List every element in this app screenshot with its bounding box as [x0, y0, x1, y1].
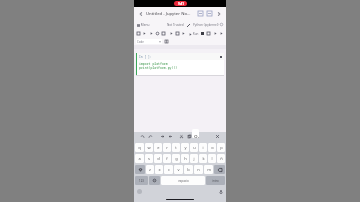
staticText: e	[157, 145, 160, 150]
button[interactable]: Paste	[195, 134, 200, 139]
button[interactable]: Undo	[140, 134, 145, 139]
button[interactable]: q	[135, 143, 144, 152]
button[interactable]: espacio	[161, 176, 205, 185]
button[interactable]: Forward	[215, 10, 223, 18]
button[interactable]: Toolbar action	[149, 31, 154, 36]
button[interactable]: Toolbar action	[161, 31, 166, 36]
staticText: d	[157, 156, 160, 161]
button[interactable]: Grid	[164, 39, 169, 44]
button[interactable]: Shift	[135, 165, 145, 174]
button[interactable]: s	[145, 154, 153, 163]
button[interactable]: Indent	[160, 134, 165, 139]
button[interactable]: Back	[137, 10, 145, 18]
button[interactable]: Toolbar action	[142, 31, 147, 36]
button[interactable]: Close	[215, 134, 220, 139]
button[interactable]: h	[181, 154, 189, 163]
staticText: espacio	[178, 179, 189, 183]
button[interactable]: i	[199, 143, 207, 152]
button[interactable]: k	[199, 154, 207, 163]
button[interactable]: l	[208, 154, 216, 163]
button[interactable]: Emoji	[149, 176, 160, 185]
button[interactable]: ñ	[217, 154, 225, 163]
button[interactable]: Copy	[187, 134, 192, 139]
button[interactable]: u	[190, 143, 198, 152]
staticText: v	[177, 167, 180, 172]
button[interactable]: Menu	[137, 23, 150, 27]
button[interactable]: Bookmark	[206, 10, 213, 17]
staticText: Menu	[140, 23, 150, 27]
staticText: x	[158, 167, 161, 172]
button[interactable]: a	[135, 154, 144, 163]
staticText: g	[175, 156, 178, 161]
staticText: f	[166, 156, 168, 161]
button[interactable]: w	[145, 143, 153, 152]
button[interactable]: y	[181, 143, 189, 152]
staticText: Run	[192, 32, 199, 36]
button[interactable]: Cell menu	[219, 55, 222, 58]
staticText: p	[220, 145, 223, 150]
button[interactable]: m	[204, 165, 213, 174]
button[interactable]: t	[172, 143, 180, 152]
button[interactable]: v	[174, 165, 183, 174]
button[interactable]: p	[217, 143, 225, 152]
button[interactable]: intro	[206, 176, 225, 185]
button[interactable]: Toolbar action	[219, 31, 224, 36]
staticText: Python (ipykernel)	[193, 23, 219, 27]
button[interactable]: Toolbar action	[181, 31, 186, 36]
button[interactable]: Toolbar action	[136, 31, 141, 36]
staticText: 9:41	[178, 2, 184, 6]
staticText: o	[211, 145, 214, 150]
staticText: c	[168, 167, 170, 172]
button[interactable]: Toolbar action	[155, 31, 160, 36]
staticText: y	[184, 145, 187, 150]
button[interactable]: j	[190, 154, 198, 163]
staticText: l	[211, 156, 213, 161]
button[interactable]: In [ ]:	[136, 53, 224, 75]
staticText: q	[138, 145, 141, 150]
button[interactable]: Backspace	[214, 165, 225, 174]
button[interactable]: Dictate	[218, 189, 223, 194]
button[interactable]: Edit	[186, 23, 190, 27]
staticText: r	[166, 145, 168, 150]
staticText: h	[184, 156, 187, 161]
staticText: w	[147, 145, 151, 150]
button[interactable]: g	[172, 154, 180, 163]
button[interactable]: o	[208, 143, 216, 152]
staticText: k	[202, 156, 205, 161]
button[interactable]: Toolbar action	[169, 31, 174, 36]
staticText: In [ ]:	[139, 55, 152, 59]
staticText: print(platform.py())	[139, 66, 178, 70]
button[interactable]: Keyboard settings	[137, 189, 142, 194]
staticText: n	[197, 167, 200, 172]
button[interactable]: Share	[197, 10, 204, 17]
staticText: i	[202, 145, 204, 150]
button[interactable]: Not Trusted	[167, 23, 184, 27]
button[interactable]: r	[163, 143, 171, 152]
staticText: m	[207, 167, 211, 172]
staticText: z	[149, 167, 151, 172]
button[interactable]: x	[155, 165, 163, 174]
staticText: u	[193, 145, 196, 150]
button[interactable]: n	[194, 165, 203, 174]
button[interactable]: Toolbar action	[200, 31, 205, 36]
button[interactable]: Toolbar action	[213, 31, 218, 36]
staticText: b	[187, 167, 190, 172]
button[interactable]: Outdent	[168, 134, 173, 139]
button[interactable]: Cut	[179, 134, 184, 139]
button[interactable]: f	[163, 154, 171, 163]
button[interactable]: Toolbar action	[206, 31, 211, 36]
button[interactable]: Run	[189, 32, 199, 36]
staticText: import platform	[139, 62, 168, 66]
button[interactable]: Code	[136, 39, 162, 44]
staticText: Code	[137, 40, 144, 44]
button[interactable]: c	[164, 165, 173, 174]
staticText: ñ	[220, 156, 223, 161]
button[interactable]: b	[184, 165, 193, 174]
staticText: s	[148, 156, 150, 161]
button[interactable]: 123	[135, 176, 148, 185]
button[interactable]: z	[146, 165, 154, 174]
button[interactable]: e	[154, 143, 162, 152]
button[interactable]: d	[154, 154, 162, 163]
button[interactable]: Toolbar action	[175, 31, 180, 36]
button[interactable]: Redo	[148, 134, 153, 139]
